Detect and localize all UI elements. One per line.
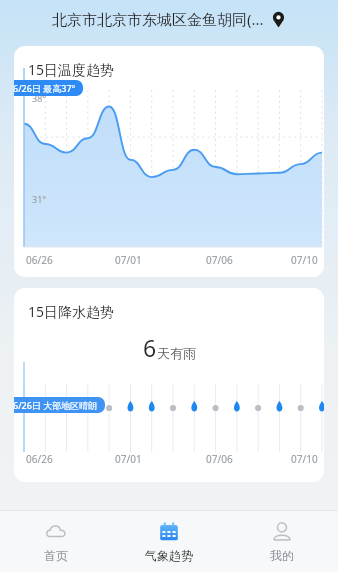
- staticText: 07/06: [206, 253, 233, 267]
- staticText: 07/10: [291, 253, 318, 267]
- staticText: 6/26日 最高37°: [14, 82, 76, 94]
- staticText: 我的: [270, 548, 294, 563]
- button[interactable]: 15日温度趋势: [14, 46, 324, 277]
- staticText: 15日温度趋势: [28, 60, 115, 79]
- staticText: 首页: [44, 548, 68, 563]
- other: Location: [270, 11, 287, 28]
- staticText: 06/26: [26, 253, 53, 267]
- staticText: 38°: [32, 92, 47, 104]
- staticText: 6: [143, 332, 157, 363]
- staticText: 31°: [32, 193, 47, 205]
- button[interactable]: 气象趋势: [112, 511, 225, 572]
- staticText: 07/06: [206, 452, 233, 466]
- staticText: 07/10: [291, 452, 318, 466]
- button[interactable]: 北京市北京市东城区金鱼胡同(...: [0, 0, 338, 38]
- staticText: 天有雨: [157, 345, 196, 361]
- staticText: 6/26日 大部地区晴朗: [14, 399, 98, 411]
- staticText: 06/26: [26, 452, 53, 466]
- staticText: 07/01: [115, 253, 142, 267]
- staticText: 北京市北京市东城区金鱼胡同(...: [52, 9, 264, 29]
- staticText: 气象趋势: [145, 548, 193, 563]
- button[interactable]: 我的: [225, 511, 338, 572]
- staticText: 07/01: [115, 452, 142, 466]
- other: 我的: [271, 521, 293, 543]
- button[interactable]: 15日降水趋势: [14, 288, 324, 482]
- other: 气象趋势: [158, 521, 180, 543]
- button[interactable]: 首页: [0, 511, 112, 572]
- other: 首页: [45, 521, 67, 543]
- staticText: 15日降水趋势: [28, 302, 115, 321]
